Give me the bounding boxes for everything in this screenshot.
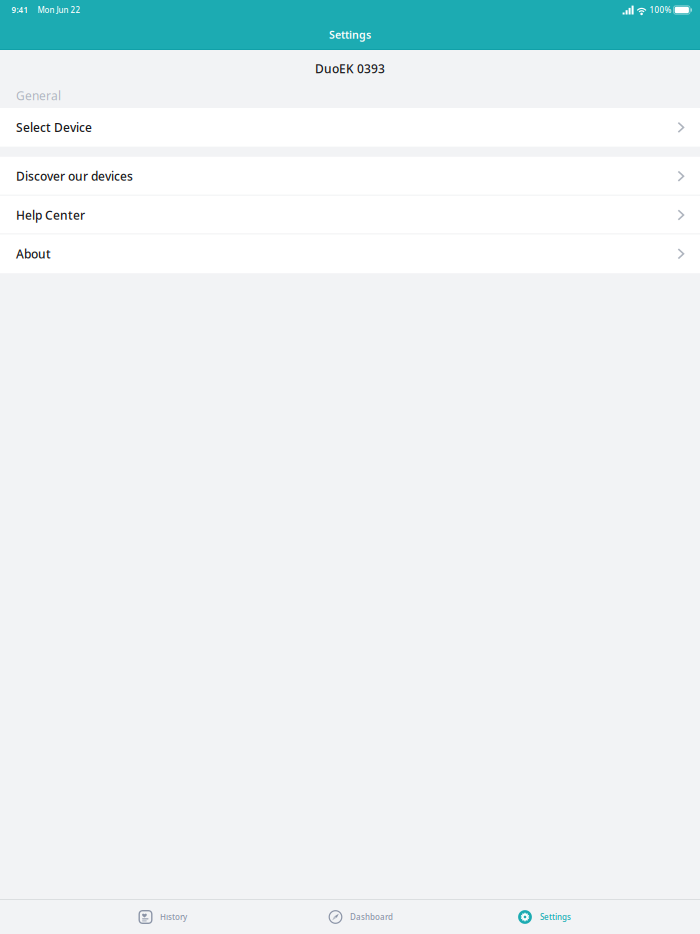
staticText: Help Center — [16, 207, 85, 223]
button[interactable]: Settings — [425, 900, 700, 934]
staticText: DuoEK 0393 — [315, 60, 385, 76]
staticText: 9:41 — [11, 5, 28, 15]
button[interactable]: Dashboard — [235, 900, 425, 934]
staticText: Dashboard — [350, 912, 393, 922]
staticText: Mon Jun 22 — [37, 5, 80, 15]
staticText: Settings — [329, 27, 371, 42]
button[interactable]: About — [0, 234, 700, 273]
staticText: About — [16, 246, 51, 262]
staticText: General — [16, 87, 61, 103]
button[interactable]: History — [0, 900, 235, 934]
staticText: History — [160, 912, 187, 922]
button[interactable]: Help Center — [0, 196, 700, 234]
staticText: 100% — [650, 5, 672, 15]
button[interactable]: Select Device — [0, 108, 700, 147]
button[interactable]: Discover our devices — [0, 157, 700, 196]
staticText: Select Device — [16, 119, 92, 135]
staticText: Discover our devices — [16, 168, 133, 184]
staticText: Settings — [540, 912, 571, 922]
